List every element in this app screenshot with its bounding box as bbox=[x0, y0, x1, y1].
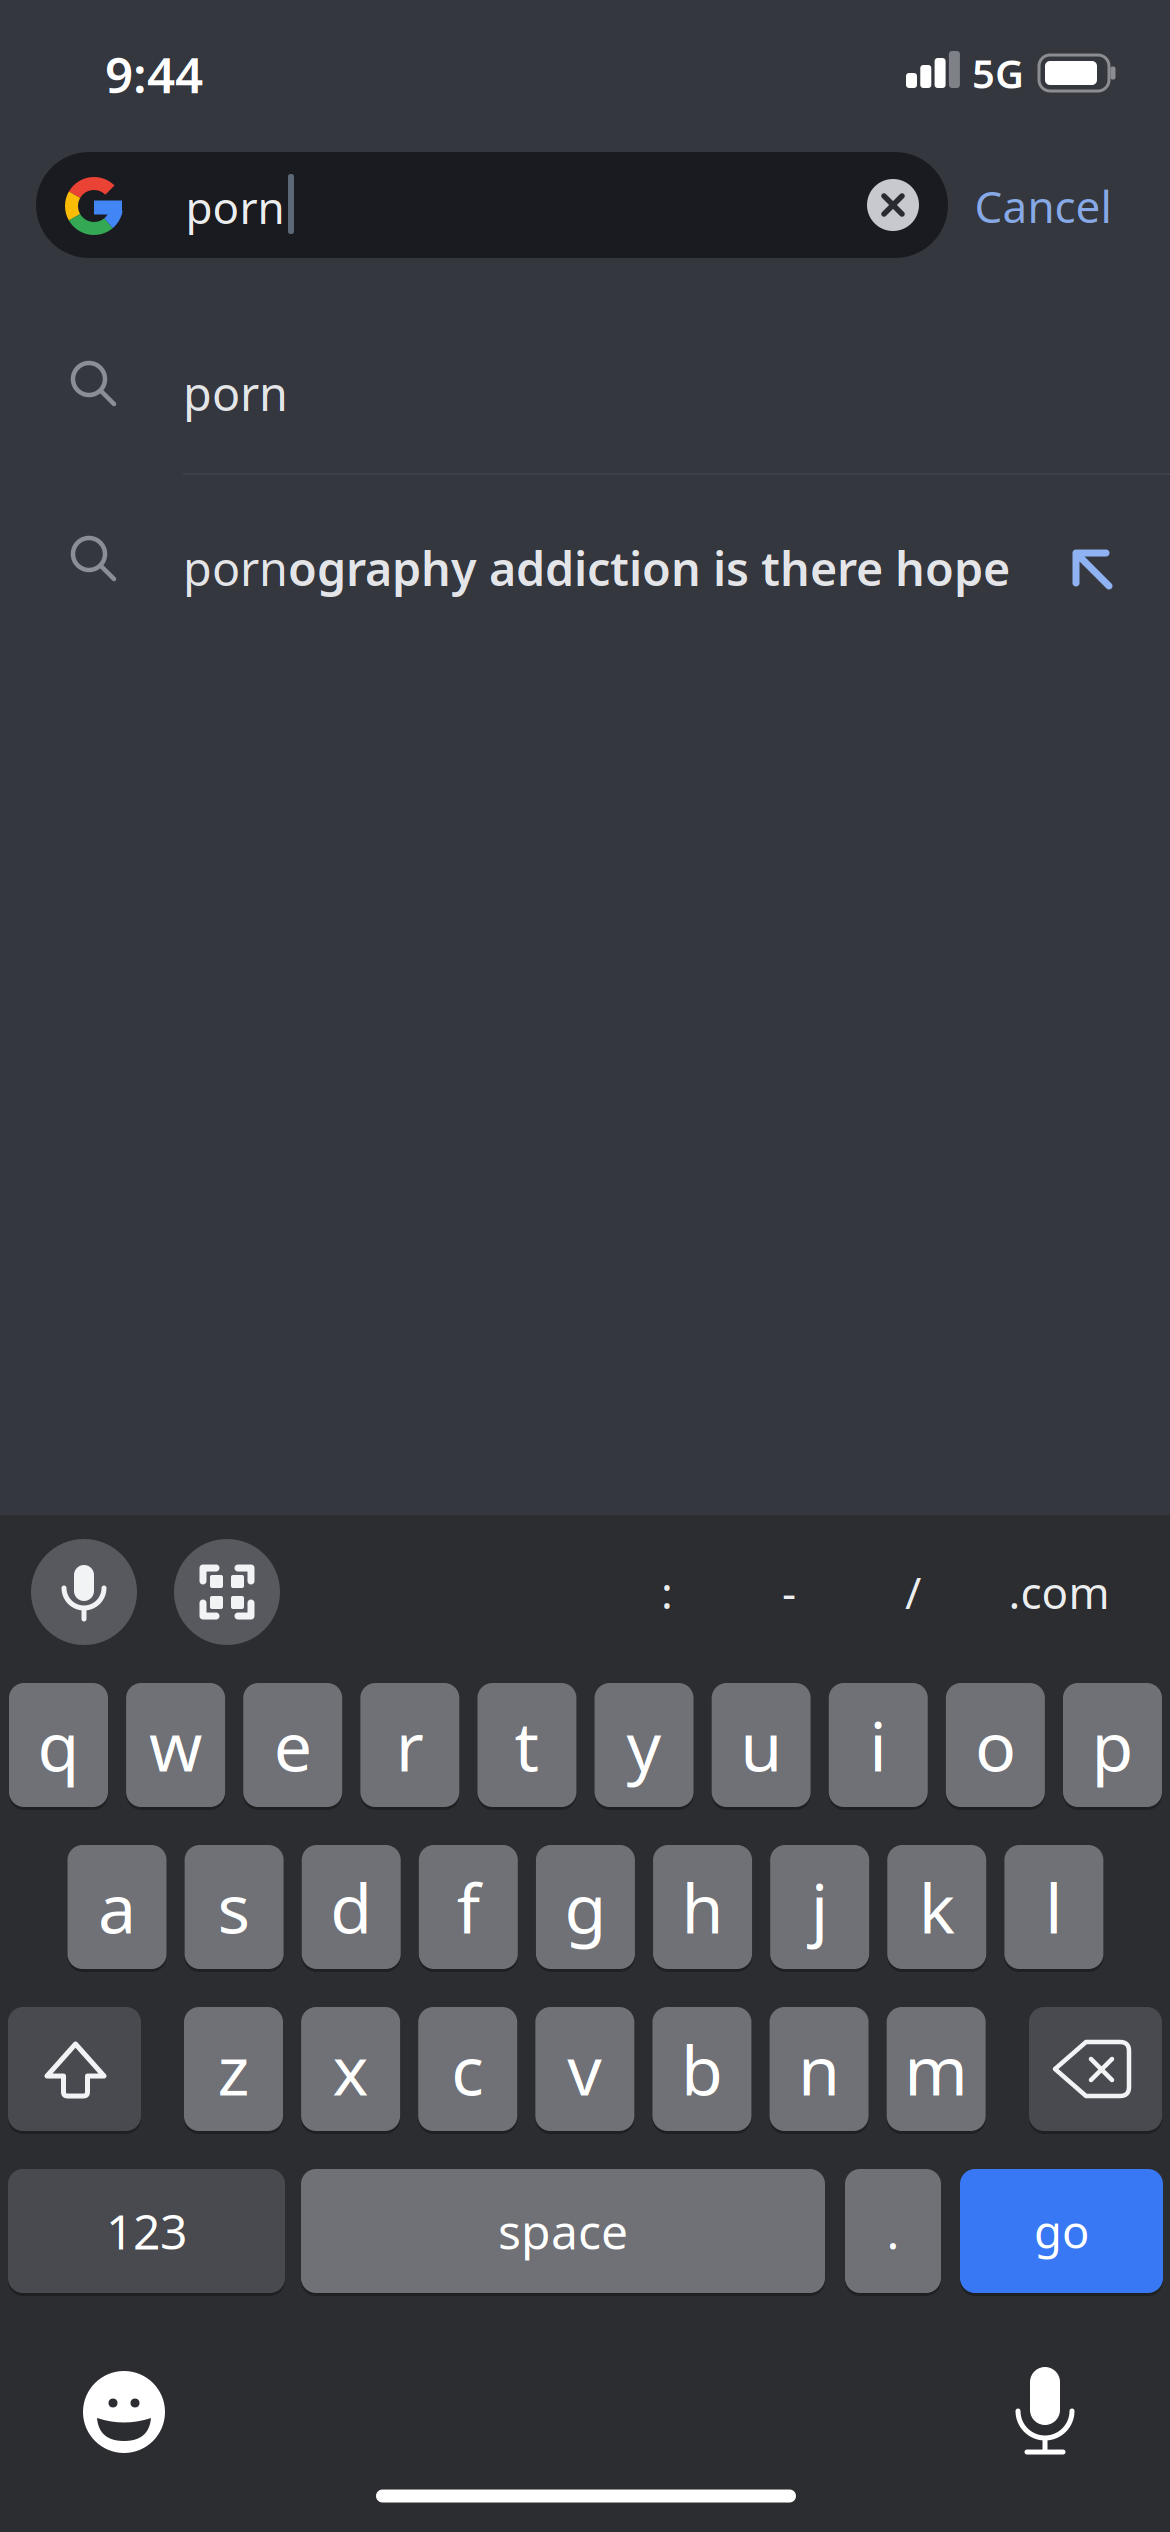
button[interactable]: e bbox=[243, 1683, 342, 1807]
button[interactable] bbox=[867, 179, 919, 231]
staticText: q bbox=[37, 1700, 79, 1790]
button[interactable]: porn bbox=[183, 498, 1170, 638]
button[interactable]: w bbox=[126, 1683, 225, 1807]
button[interactable] bbox=[1000, 2365, 1090, 2455]
staticText: o bbox=[975, 1700, 1016, 1790]
button[interactable]: l bbox=[1004, 1845, 1103, 1969]
staticText: b bbox=[681, 2024, 723, 2114]
staticText: - bbox=[782, 1563, 796, 1621]
button[interactable]: m bbox=[887, 2007, 986, 2131]
button[interactable]: k bbox=[887, 1845, 986, 1969]
button[interactable] bbox=[174, 1539, 280, 1645]
button[interactable]: d bbox=[302, 1845, 401, 1969]
button[interactable]: j bbox=[770, 1845, 869, 1969]
staticText: x bbox=[333, 2024, 369, 2114]
staticText: u bbox=[740, 1700, 782, 1790]
button[interactable]: space bbox=[301, 2169, 825, 2293]
staticText: porn bbox=[183, 537, 288, 599]
staticText: g bbox=[564, 1862, 606, 1952]
button[interactable]: r bbox=[360, 1683, 459, 1807]
button[interactable]: u bbox=[712, 1683, 811, 1807]
staticText: : bbox=[661, 1563, 673, 1621]
button[interactable]: . bbox=[845, 2169, 941, 2293]
staticText: go bbox=[1034, 2201, 1089, 2261]
staticText: porn bbox=[183, 362, 288, 424]
button[interactable]: t bbox=[477, 1683, 576, 1807]
button[interactable] bbox=[31, 1539, 137, 1645]
staticText: z bbox=[217, 2024, 249, 2114]
staticText: a bbox=[98, 1862, 136, 1952]
button[interactable]: .com bbox=[1008, 1563, 1109, 1621]
button[interactable]: porn bbox=[183, 323, 1170, 463]
button[interactable]: p bbox=[1063, 1683, 1162, 1807]
staticText: h bbox=[681, 1862, 723, 1952]
button[interactable]: a bbox=[67, 1845, 166, 1969]
button[interactable]: Cancel bbox=[974, 177, 1111, 235]
button[interactable]: b bbox=[652, 2007, 751, 2131]
staticText: Cancel bbox=[974, 177, 1111, 235]
staticText: . bbox=[886, 2199, 899, 2263]
staticText: ography addiction is there hope bbox=[288, 537, 1010, 599]
staticText: .com bbox=[1008, 1563, 1109, 1621]
staticText: i bbox=[869, 1700, 887, 1790]
button[interactable]: h bbox=[653, 1845, 752, 1969]
staticText: 123 bbox=[106, 2199, 187, 2263]
button[interactable]: go bbox=[960, 2169, 1163, 2293]
button[interactable]: i bbox=[829, 1683, 928, 1807]
staticText: 9:44 bbox=[105, 41, 203, 107]
staticText: c bbox=[451, 2024, 484, 2114]
button[interactable] bbox=[1029, 2007, 1162, 2131]
staticText: / bbox=[905, 1563, 921, 1621]
button[interactable]: : bbox=[661, 1563, 673, 1621]
staticText: v bbox=[567, 2024, 602, 2114]
button[interactable] bbox=[83, 2371, 165, 2453]
staticText: j bbox=[811, 1862, 829, 1952]
staticText: l bbox=[1045, 1862, 1063, 1952]
button[interactable]: n bbox=[769, 2007, 868, 2131]
staticText: w bbox=[149, 1700, 202, 1790]
button[interactable]: s bbox=[185, 1845, 284, 1969]
button[interactable]: 123 bbox=[8, 2169, 285, 2293]
button[interactable]: o bbox=[946, 1683, 1045, 1807]
staticText: 5G bbox=[972, 46, 1024, 99]
staticText: porn bbox=[185, 178, 284, 236]
staticText: e bbox=[274, 1700, 312, 1790]
button[interactable]: z bbox=[184, 2007, 283, 2131]
staticText: f bbox=[457, 1862, 480, 1952]
button[interactable]: x bbox=[301, 2007, 400, 2131]
button[interactable] bbox=[8, 2007, 141, 2131]
button[interactable]: g bbox=[536, 1845, 635, 1969]
button[interactable]: c bbox=[418, 2007, 517, 2131]
staticText: p bbox=[1091, 1700, 1133, 1790]
staticText: t bbox=[514, 1700, 539, 1790]
button[interactable]: / bbox=[905, 1563, 921, 1621]
button[interactable] bbox=[36, 152, 948, 258]
staticText: y bbox=[626, 1700, 661, 1790]
button[interactable]: y bbox=[594, 1683, 693, 1807]
button[interactable]: q bbox=[9, 1683, 108, 1807]
staticText: s bbox=[218, 1862, 251, 1952]
staticText: k bbox=[919, 1862, 955, 1952]
staticText: r bbox=[396, 1700, 424, 1790]
button[interactable]: v bbox=[535, 2007, 634, 2131]
button[interactable]: f bbox=[419, 1845, 518, 1969]
button[interactable]: - bbox=[782, 1563, 796, 1621]
staticText: space bbox=[498, 2199, 628, 2263]
staticText: m bbox=[904, 2024, 968, 2114]
staticText: d bbox=[330, 1862, 372, 1952]
staticText: n bbox=[798, 2024, 840, 2114]
